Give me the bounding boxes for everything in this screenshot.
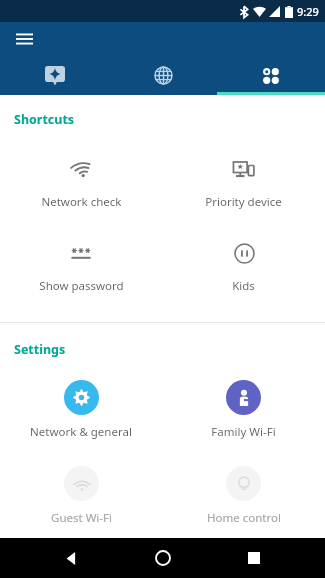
button[interactable]: Home <box>143 538 183 578</box>
button[interactable]: Menu <box>8 23 40 55</box>
staticText: Family Wi-Fi <box>211 424 276 440</box>
staticText: Settings <box>14 341 66 358</box>
button[interactable]: Guest Wi-Fi <box>0 464 162 528</box>
staticText: Home control <box>207 510 281 526</box>
button[interactable]: Priority device <box>162 150 325 214</box>
button[interactable]: Family Wi-Fi <box>162 378 325 442</box>
staticText: 9:29 <box>297 4 319 19</box>
button[interactable]: Network check <box>0 150 162 214</box>
staticText: Kids <box>232 278 255 294</box>
staticText: Priority device <box>205 194 282 210</box>
staticText: Network & general <box>30 424 132 440</box>
staticText: Guest Wi-Fi <box>51 510 112 526</box>
button[interactable]: Show password <box>0 234 162 298</box>
button[interactable]: Kids <box>162 234 325 298</box>
button[interactable]: Network <box>109 56 217 95</box>
staticText: Network check <box>41 194 122 210</box>
button[interactable]: Devices <box>0 56 109 95</box>
button[interactable]: Network & general <box>0 378 162 442</box>
button[interactable]: Shortcuts and settings <box>217 56 325 95</box>
staticText: Shortcuts <box>14 111 75 128</box>
button[interactable]: Back <box>51 538 91 578</box>
button[interactable]: Home control <box>162 464 325 528</box>
button[interactable]: Recents <box>234 538 274 578</box>
staticText: Show password <box>39 278 124 294</box>
